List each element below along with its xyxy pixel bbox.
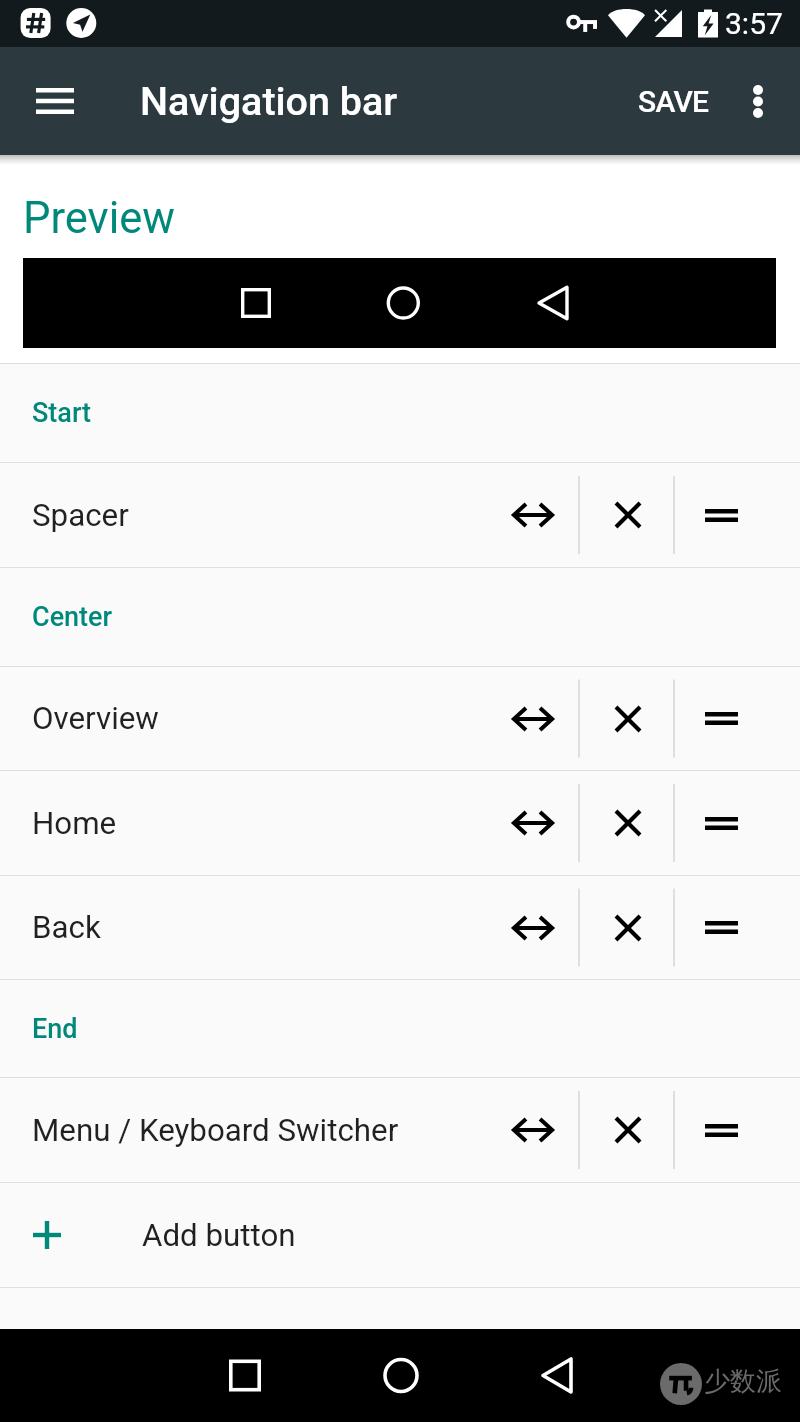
staticText: Start <box>32 397 92 429</box>
button[interactable]: Adjust width <box>485 771 580 875</box>
button[interactable]: Open navigation drawer <box>0 47 110 155</box>
button[interactable]: Reorder <box>675 667 800 770</box>
staticText: Navigation bar <box>140 78 398 124</box>
button[interactable]: Back <box>0 876 485 979</box>
button[interactable]: Adjust width <box>485 667 580 770</box>
staticText: Overview <box>32 700 159 737</box>
button[interactable]: Add button <box>0 1183 800 1287</box>
staticText: Spacer <box>32 497 129 534</box>
button[interactable]: Reorder <box>675 771 800 875</box>
staticText: Center <box>32 601 113 633</box>
button[interactable]: More options <box>716 47 800 155</box>
staticText: End <box>32 1013 78 1045</box>
button[interactable]: Remove <box>580 876 675 979</box>
staticText: 少数派 <box>704 1365 782 1398</box>
button[interactable]: Adjust width <box>485 876 580 979</box>
button[interactable]: Remove <box>580 1078 675 1182</box>
button[interactable]: Reorder <box>675 463 800 567</box>
button[interactable]: Remove <box>580 463 675 567</box>
button[interactable]: Home <box>0 771 485 875</box>
button[interactable]: Adjust width <box>485 1078 580 1182</box>
staticText: Back <box>32 909 101 946</box>
button[interactable]: Home <box>356 1329 456 1422</box>
button[interactable]: Adjust width <box>485 463 580 567</box>
staticText: Add button <box>142 1217 296 1254</box>
staticText: Home <box>32 805 117 842</box>
button[interactable]: Back <box>510 1329 610 1422</box>
staticText: SAVE <box>638 84 709 119</box>
button[interactable]: Remove <box>580 771 675 875</box>
staticText: Menu / Keyboard Switcher <box>32 1112 399 1149</box>
button[interactable]: Menu / Keyboard Switcher <box>0 1078 485 1182</box>
button[interactable]: Recents <box>200 1329 300 1422</box>
button[interactable]: Spacer <box>0 463 485 567</box>
staticText: 3:57 <box>725 6 783 41</box>
button[interactable]: Reorder <box>675 876 800 979</box>
button[interactable]: Reorder <box>675 1078 800 1182</box>
button[interactable]: SAVE <box>620 47 716 155</box>
button[interactable]: Overview <box>0 667 485 770</box>
button[interactable]: Remove <box>580 667 675 770</box>
staticText: Preview <box>23 193 175 244</box>
